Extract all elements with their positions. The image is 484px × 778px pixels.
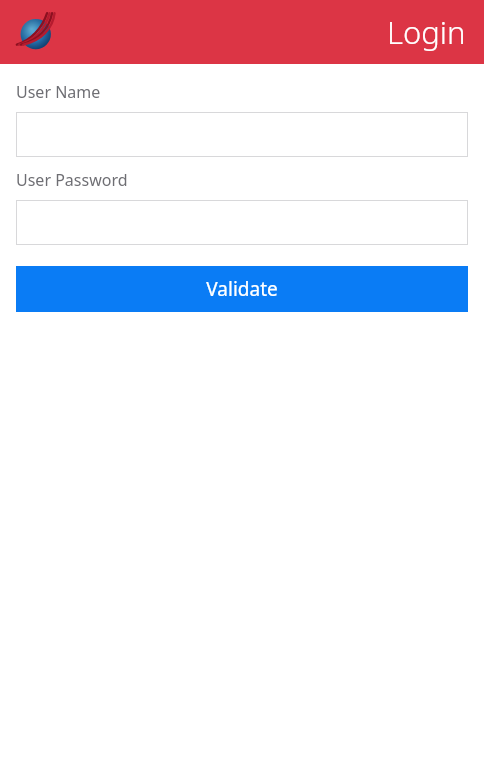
staticText: Login bbox=[387, 11, 466, 53]
other: App logo bbox=[16, 11, 58, 53]
button[interactable] bbox=[16, 200, 468, 245]
button[interactable]: Validate bbox=[16, 266, 468, 312]
staticText: User Password bbox=[16, 169, 128, 191]
button[interactable] bbox=[16, 112, 468, 157]
staticText: User Name bbox=[16, 81, 101, 103]
staticText: Validate bbox=[206, 276, 278, 302]
